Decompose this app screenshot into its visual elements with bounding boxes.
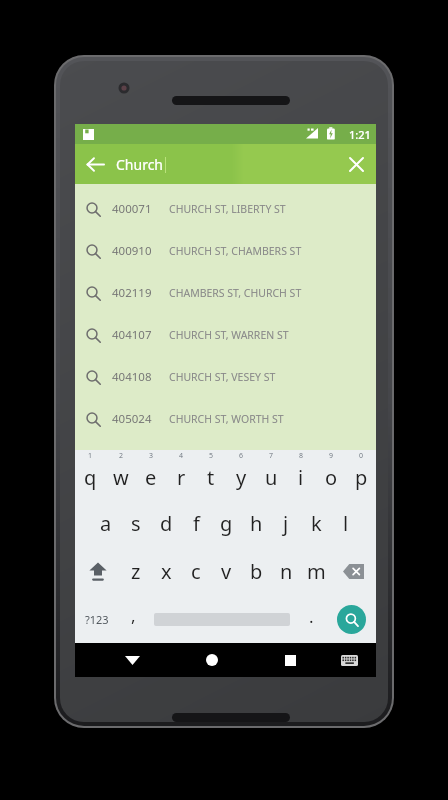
button[interactable]: ?123	[75, 595, 118, 643]
button[interactable]: 5	[196, 450, 226, 499]
button[interactable]: s	[121, 499, 151, 547]
button[interactable]: Space	[148, 595, 296, 643]
button[interactable]: d	[151, 499, 181, 547]
staticText: CHURCH ST, WARREN ST	[169, 328, 289, 342]
staticText: k	[311, 510, 322, 537]
staticText: i	[298, 464, 304, 491]
staticText: 4	[179, 451, 184, 461]
staticText: 3	[149, 451, 154, 461]
staticText: 400071	[112, 201, 169, 217]
staticText: 400910	[112, 243, 169, 259]
button[interactable]: 6	[226, 450, 256, 499]
button[interactable]: Switch keyboard	[330, 643, 368, 677]
staticText: 7	[269, 451, 274, 461]
staticText: d	[160, 510, 173, 537]
staticText: 402119	[112, 285, 169, 301]
button[interactable]: z	[121, 547, 151, 595]
button[interactable]: 7	[256, 450, 286, 499]
button[interactable]: h	[241, 499, 271, 547]
staticText: s	[131, 510, 141, 537]
staticText: ,	[131, 604, 136, 627]
button[interactable]: c	[181, 547, 211, 595]
button[interactable]: m	[301, 547, 331, 595]
button[interactable]: k	[301, 499, 331, 547]
staticText: 9	[329, 451, 334, 461]
staticText: 0	[359, 451, 364, 461]
button[interactable]: 8	[286, 450, 316, 499]
staticText: m	[307, 558, 326, 585]
staticText: a	[100, 510, 112, 537]
staticText: CHURCH ST, LIBERTY ST	[169, 202, 286, 216]
button[interactable]: 405024	[75, 398, 376, 440]
staticText: 1:21	[349, 127, 371, 142]
button[interactable]: b	[241, 547, 271, 595]
button[interactable]: 0	[346, 450, 376, 499]
button[interactable]: Search	[326, 595, 376, 643]
staticText: CHURCH ST, VESEY ST	[169, 370, 276, 384]
button[interactable]: l	[331, 499, 361, 547]
staticText: j	[283, 510, 289, 537]
staticText: x	[161, 558, 172, 585]
staticText: y	[236, 464, 247, 491]
button[interactable]: 3	[136, 450, 166, 499]
staticText: 8	[299, 451, 304, 461]
button[interactable]: Clear query	[336, 144, 376, 184]
staticText: 404108	[112, 369, 169, 385]
button[interactable]: 9	[316, 450, 346, 499]
button[interactable]: v	[211, 547, 241, 595]
button[interactable]: 402119	[75, 272, 376, 314]
button[interactable]: Shift	[75, 547, 121, 595]
staticText: ?123	[85, 612, 109, 627]
staticText: e	[145, 464, 157, 491]
staticText: CHAMBERS ST, CHURCH ST	[169, 286, 302, 300]
staticText: q	[84, 464, 97, 491]
button[interactable]: Back	[93, 643, 172, 677]
staticText: l	[343, 510, 349, 537]
staticText: z	[131, 558, 141, 585]
staticText: w	[113, 464, 129, 491]
button[interactable]: .	[296, 595, 326, 643]
button[interactable]: x	[151, 547, 181, 595]
staticText: 1	[88, 451, 93, 461]
button[interactable]: 404108	[75, 356, 376, 398]
button[interactable]: g	[211, 499, 241, 547]
staticText: 5	[209, 451, 214, 461]
button[interactable]: ,	[118, 595, 148, 643]
button[interactable]: n	[271, 547, 301, 595]
staticText: g	[220, 510, 233, 537]
staticText: u	[265, 464, 278, 491]
button[interactable]: Navigate up	[75, 144, 115, 184]
staticText: f	[193, 510, 200, 537]
staticText: n	[280, 558, 293, 585]
button[interactable]: 2	[106, 450, 136, 499]
staticText: v	[221, 558, 232, 585]
staticText: 405024	[112, 411, 169, 427]
staticText: o	[325, 464, 338, 491]
staticText: 6	[239, 451, 244, 461]
button[interactable]: Delete	[331, 547, 376, 595]
staticText: r	[177, 464, 186, 491]
staticText: t	[207, 464, 215, 491]
staticText: Church	[116, 155, 164, 174]
button[interactable]: 400071	[75, 188, 376, 230]
button[interactable]: a	[91, 499, 121, 547]
staticText: 2	[119, 451, 124, 461]
staticText: CHURCH ST, WORTH ST	[169, 412, 284, 426]
staticText: c	[191, 558, 201, 585]
staticText: 404107	[112, 327, 169, 343]
staticText: CHURCH ST, CHAMBERS ST	[169, 244, 302, 258]
staticText: p	[355, 464, 368, 491]
button[interactable]: 400910	[75, 230, 376, 272]
button[interactable]: f	[181, 499, 211, 547]
button[interactable]: 404107	[75, 314, 376, 356]
staticText: .	[309, 605, 314, 628]
button[interactable]: 4	[166, 450, 196, 499]
button[interactable]: Recent apps	[251, 643, 330, 677]
staticText: b	[250, 558, 263, 585]
staticText: h	[250, 510, 263, 537]
button[interactable]: 1	[75, 450, 106, 499]
button[interactable]: Home	[172, 643, 251, 677]
button[interactable]: j	[271, 499, 301, 547]
